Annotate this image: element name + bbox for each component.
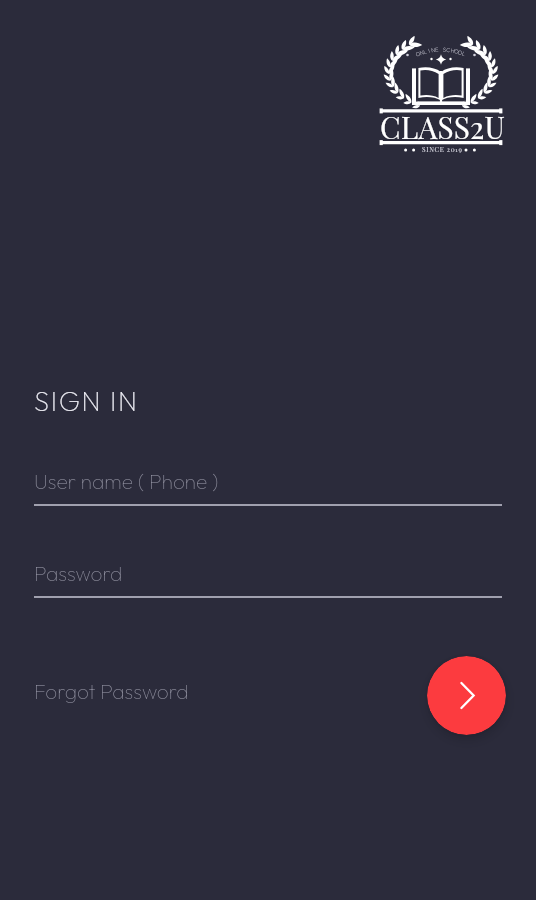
- button[interactable]: Sign in: [427, 656, 506, 735]
- staticText: User name ( Phone ): [34, 468, 219, 494]
- button[interactable]: Password: [34, 560, 502, 598]
- button[interactable]: Forgot Password: [28, 674, 195, 708]
- staticText: Password: [34, 560, 123, 586]
- staticText: SIGN IN: [34, 383, 139, 418]
- staticText: CLASS2U: [380, 107, 505, 147]
- staticText: SINCE 2019: [422, 145, 463, 154]
- staticText: Forgot Password: [34, 678, 189, 704]
- button[interactable]: User name ( Phone ): [34, 468, 502, 506]
